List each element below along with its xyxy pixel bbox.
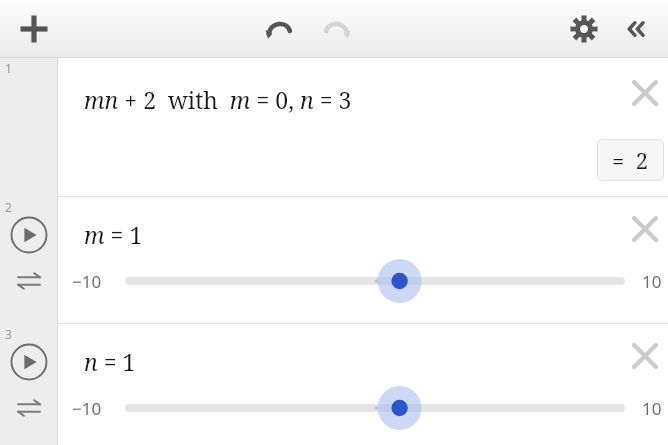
button[interactable]: Undo	[257, 7, 301, 51]
button[interactable]: Add expression	[12, 7, 56, 51]
staticText: m = 1	[84, 219, 143, 250]
button[interactable]: Swap slider bounds	[12, 391, 46, 425]
staticText: 2	[5, 199, 12, 215]
button[interactable]: mn + 2 with m = 0, n = 3	[58, 58, 668, 196]
button[interactable]: Settings	[562, 7, 606, 51]
staticText: 1	[5, 60, 12, 76]
staticText: −10	[72, 270, 102, 293]
button[interactable]: Delete expression	[625, 336, 665, 376]
staticText: 3	[5, 326, 12, 342]
button[interactable]: Slider for m	[58, 259, 668, 303]
button[interactable]: Collapse panel	[616, 7, 660, 51]
staticText: 10	[642, 270, 662, 293]
staticText: n = 1	[84, 346, 136, 377]
button[interactable]: Play slider animation	[8, 341, 50, 383]
staticText: mn + 2 with m = 0, n = 3	[84, 84, 352, 115]
button[interactable]: Slider for n	[58, 386, 668, 430]
button[interactable]: Play slider animation	[8, 214, 50, 256]
staticText: 10	[642, 397, 662, 420]
button[interactable]: Redo	[315, 7, 359, 51]
button[interactable]: n = 1	[58, 324, 668, 445]
staticText: −10	[72, 397, 102, 420]
button[interactable]: = 2	[597, 139, 664, 181]
button[interactable]: Swap slider bounds	[12, 264, 46, 298]
button[interactable]: m = 1	[58, 197, 668, 323]
button[interactable]: Delete expression	[625, 73, 665, 113]
button[interactable]: Delete expression	[625, 209, 665, 249]
staticText: = 2	[612, 145, 649, 175]
